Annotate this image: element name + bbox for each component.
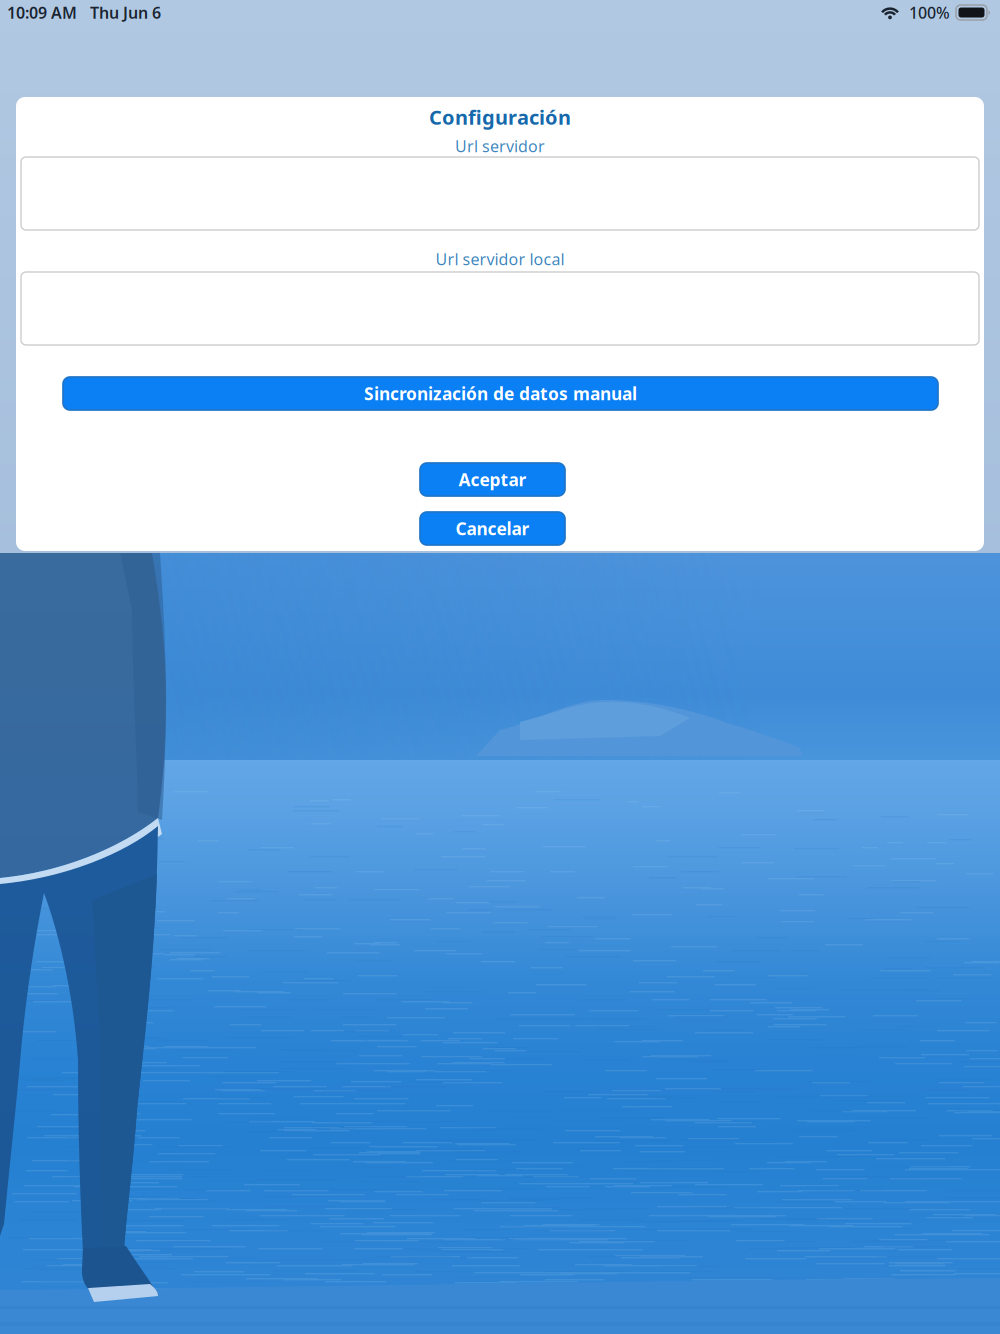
button[interactable]: Sincronización de datos manual [63,377,938,410]
staticText: 10:09 AM [7,2,77,23]
staticText: Url servidor local [435,248,564,270]
staticText: Sincronización de datos manual [364,382,637,405]
button[interactable]: Aceptar [420,463,565,496]
staticText: Cancelar [455,517,529,540]
staticText: 100% [909,2,950,23]
staticText: Aceptar [458,468,526,491]
staticText: Thu Jun 6 [90,2,161,23]
staticText: Configuración [429,104,571,130]
staticText: Url servidor [455,135,545,157]
button[interactable]: Cancelar [420,512,565,545]
